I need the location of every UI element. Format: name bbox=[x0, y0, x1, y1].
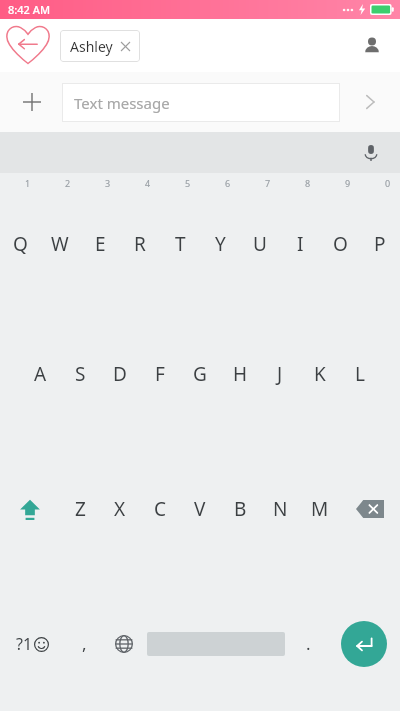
staticText: Text message bbox=[74, 93, 170, 113]
staticText: H bbox=[233, 361, 248, 387]
staticText: X bbox=[114, 496, 126, 522]
button[interactable]: Contact profile bbox=[354, 28, 390, 64]
button[interactable]: Add attachment bbox=[12, 82, 52, 122]
staticText: B bbox=[234, 496, 247, 522]
button[interactable]: 0 bbox=[360, 173, 400, 307]
staticText: 8:42 AM bbox=[8, 2, 51, 17]
staticText: F bbox=[155, 361, 165, 387]
staticText: O bbox=[333, 231, 348, 257]
button[interactable]: 5 bbox=[160, 173, 200, 307]
staticText: J bbox=[277, 361, 283, 387]
button[interactable]: X bbox=[100, 441, 140, 576]
button[interactable]: D bbox=[100, 307, 140, 441]
button[interactable]: S bbox=[60, 307, 100, 441]
button[interactable]: Ashley bbox=[60, 30, 140, 62]
staticText: Q bbox=[13, 231, 28, 257]
button[interactable]: Shift bbox=[0, 441, 60, 576]
button[interactable]: Send bbox=[348, 80, 392, 124]
button[interactable]: Backspace bbox=[340, 441, 400, 576]
button[interactable]: ?1 bbox=[0, 576, 64, 711]
button[interactable]: . bbox=[288, 576, 328, 711]
staticText: 1 bbox=[25, 177, 31, 189]
button[interactable]: L bbox=[340, 307, 380, 441]
button[interactable]: N bbox=[260, 441, 300, 576]
staticText: Y bbox=[215, 231, 226, 257]
button[interactable]: 7 bbox=[240, 173, 280, 307]
button[interactable]: 2 bbox=[40, 173, 80, 307]
button[interactable]: C bbox=[140, 441, 180, 576]
button[interactable]: 9 bbox=[320, 173, 360, 307]
button[interactable]: B bbox=[220, 441, 260, 576]
staticText: 4 bbox=[145, 177, 151, 189]
staticText: 9 bbox=[345, 177, 351, 189]
button[interactable]: F bbox=[140, 307, 180, 441]
staticText: W bbox=[51, 231, 69, 257]
button[interactable]: G bbox=[180, 307, 220, 441]
staticText: A bbox=[34, 361, 47, 387]
button[interactable]: H bbox=[220, 307, 260, 441]
button[interactable]: V bbox=[180, 441, 220, 576]
staticText: 3 bbox=[105, 177, 111, 189]
button[interactable]: , bbox=[64, 576, 104, 711]
button[interactable]: Text message bbox=[62, 83, 340, 122]
button[interactable]: Z bbox=[60, 441, 100, 576]
button[interactable]: 3 bbox=[80, 173, 120, 307]
staticText: S bbox=[75, 361, 86, 387]
staticText: N bbox=[273, 496, 288, 522]
staticText: U bbox=[253, 231, 267, 257]
staticText: I bbox=[297, 231, 304, 257]
staticText: R bbox=[134, 231, 146, 257]
staticText: , bbox=[82, 632, 87, 655]
button[interactable]: Back bbox=[2, 20, 54, 72]
button[interactable]: A bbox=[20, 307, 60, 441]
staticText: Ashley bbox=[70, 37, 113, 56]
staticText: G bbox=[193, 361, 207, 387]
staticText: P bbox=[374, 231, 386, 257]
staticText: E bbox=[95, 231, 106, 257]
staticText: 7 bbox=[265, 177, 271, 189]
staticText: ?1 bbox=[16, 633, 33, 655]
staticText: 8 bbox=[305, 177, 311, 189]
button[interactable]: 6 bbox=[200, 173, 240, 307]
staticText: 0 bbox=[385, 177, 391, 189]
button[interactable]: M bbox=[300, 441, 340, 576]
button[interactable]: Voice input bbox=[354, 136, 388, 170]
staticText: D bbox=[113, 361, 127, 387]
button[interactable]: 1 bbox=[0, 173, 40, 307]
staticText: L bbox=[355, 361, 365, 387]
staticText: K bbox=[314, 361, 326, 387]
staticText: M bbox=[311, 496, 329, 522]
button[interactable] bbox=[144, 576, 288, 711]
staticText: 6 bbox=[225, 177, 231, 189]
staticText: 5 bbox=[185, 177, 191, 189]
button[interactable]: Change language bbox=[104, 576, 144, 711]
staticText: V bbox=[194, 496, 206, 522]
staticText: Z bbox=[75, 496, 86, 522]
staticText: . bbox=[306, 632, 311, 655]
button[interactable]: 4 bbox=[120, 173, 160, 307]
button[interactable]: Enter bbox=[328, 576, 400, 711]
staticText: 2 bbox=[65, 177, 71, 189]
button[interactable]: K bbox=[300, 307, 340, 441]
button[interactable]: 8 bbox=[280, 173, 320, 307]
staticText: C bbox=[154, 496, 167, 522]
staticText: T bbox=[175, 231, 186, 257]
button[interactable]: J bbox=[260, 307, 300, 441]
